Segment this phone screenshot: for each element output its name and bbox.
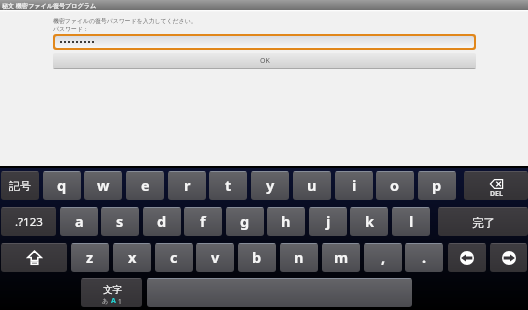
staticText: x	[128, 247, 137, 267]
button[interactable]: 完了	[438, 207, 528, 236]
button[interactable]: x	[113, 243, 151, 272]
staticText: c	[170, 247, 178, 267]
staticText: ,	[381, 247, 386, 267]
staticText: 文字	[103, 284, 122, 296]
staticText: b	[252, 247, 262, 267]
staticText: t	[225, 175, 232, 195]
button[interactable]: OK	[53, 53, 476, 69]
staticText: 完了	[472, 216, 495, 230]
staticText: q	[57, 175, 67, 195]
staticText: w	[97, 175, 110, 195]
staticText: 1	[118, 297, 122, 306]
staticText: k	[365, 211, 374, 231]
button[interactable]: m	[322, 243, 360, 272]
button[interactable]: y	[251, 171, 289, 200]
staticText: OK	[260, 56, 270, 66]
staticText: o	[390, 175, 400, 195]
staticText: パスワード：	[53, 25, 89, 32]
button[interactable]: t	[209, 171, 247, 200]
button[interactable]: j	[309, 207, 347, 236]
staticText: i	[352, 175, 357, 195]
staticText: f	[200, 211, 206, 231]
staticText: g	[240, 211, 250, 231]
button[interactable]: u	[293, 171, 331, 200]
button[interactable]: Space	[147, 278, 412, 307]
staticText: .?123	[15, 214, 43, 230]
button[interactable]: i	[335, 171, 373, 200]
staticText: s	[116, 211, 124, 231]
staticText: u	[307, 175, 317, 195]
button[interactable]: k	[350, 207, 388, 236]
button[interactable]: q	[43, 171, 81, 200]
staticText: あ	[102, 297, 109, 305]
staticText: 秘文 機密ファイル復号プログラム	[2, 1, 97, 9]
button[interactable]: Delete	[464, 171, 528, 200]
button[interactable]: Cursor right	[490, 243, 527, 272]
staticText: n	[294, 247, 304, 267]
button[interactable]: s	[101, 207, 139, 236]
button[interactable]: z	[71, 243, 109, 272]
button[interactable]: v	[196, 243, 234, 272]
staticText: DEL	[490, 189, 503, 199]
button[interactable]: e	[126, 171, 164, 200]
staticText: .	[422, 247, 427, 267]
button[interactable]: g	[226, 207, 264, 236]
staticText: p	[432, 175, 442, 195]
button[interactable]: c	[155, 243, 193, 272]
staticText: j	[326, 211, 331, 231]
staticText: r	[184, 175, 191, 195]
button[interactable]: r	[168, 171, 206, 200]
button[interactable]: Shift	[1, 243, 67, 272]
button[interactable]: h	[267, 207, 305, 236]
button[interactable]: f	[184, 207, 222, 236]
staticText: y	[266, 175, 275, 195]
button[interactable]: 記号	[1, 171, 39, 200]
button[interactable]: l	[392, 207, 430, 236]
staticText: e	[141, 175, 150, 195]
button[interactable]: a	[60, 207, 98, 236]
staticText: m	[334, 247, 349, 267]
button[interactable]: ,	[364, 243, 402, 272]
button[interactable]: o	[376, 171, 414, 200]
staticText: a	[75, 211, 84, 231]
staticText: A	[111, 296, 116, 306]
staticText: v	[211, 247, 220, 267]
button[interactable]: Cursor left	[448, 243, 486, 272]
staticText: 機密ファイルの復号パスワードを入力してください。	[53, 17, 197, 24]
staticText: h	[281, 211, 291, 231]
staticText: l	[409, 211, 414, 231]
staticText: 記号	[9, 179, 31, 193]
button[interactable]: w	[84, 171, 122, 200]
button[interactable]: b	[238, 243, 276, 272]
staticText: z	[86, 247, 94, 267]
button[interactable]: n	[280, 243, 318, 272]
button[interactable]: .?123	[1, 207, 56, 236]
button[interactable]: Input mode	[81, 278, 142, 307]
button[interactable]: .	[405, 243, 443, 272]
staticText: d	[157, 211, 167, 231]
button[interactable]: p	[418, 171, 456, 200]
button[interactable]: d	[143, 207, 181, 236]
button[interactable]	[55, 36, 474, 48]
